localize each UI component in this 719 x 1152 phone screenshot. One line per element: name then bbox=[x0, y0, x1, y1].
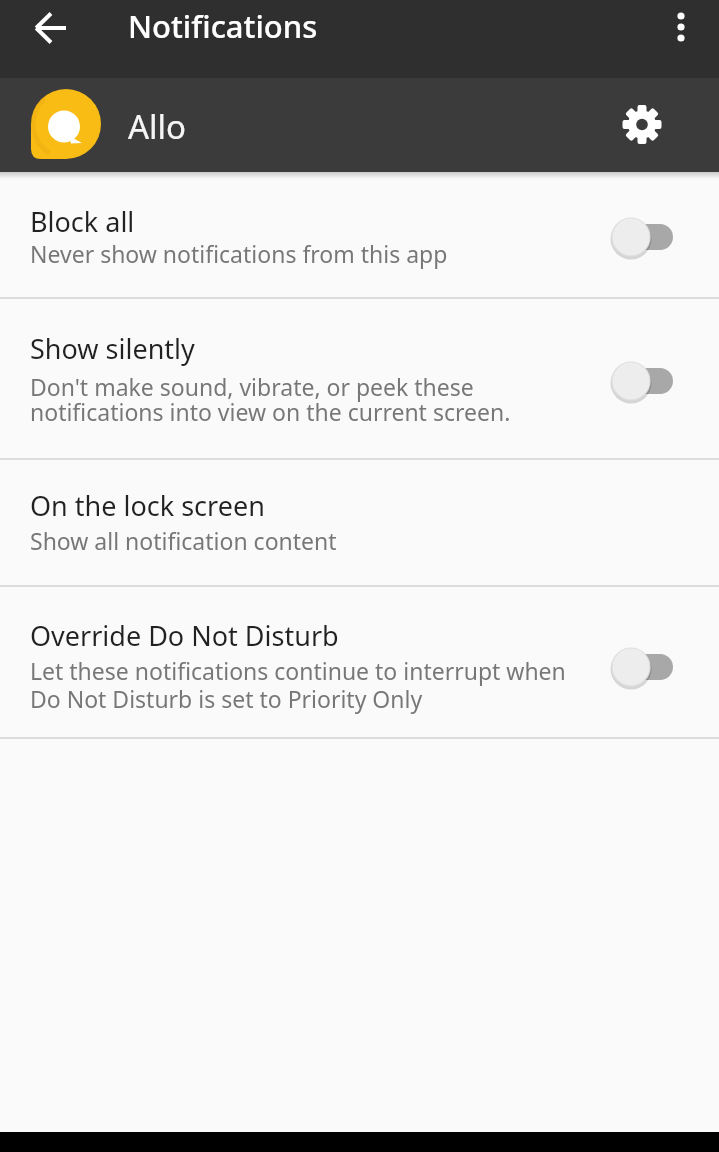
button[interactable] bbox=[0, 172, 719, 298]
staticText: Show all notification content bbox=[30, 525, 337, 556]
staticText: On the lock screen bbox=[30, 487, 265, 524]
staticText: Never show notifications from this app bbox=[30, 238, 448, 269]
staticText: Do Not Disturb is set to Priority Only bbox=[30, 683, 423, 714]
staticText: Show silently bbox=[30, 330, 195, 367]
button[interactable] bbox=[0, 460, 719, 585]
button[interactable] bbox=[586, 356, 676, 406]
staticText: Let these notifications continue to inte… bbox=[30, 655, 566, 686]
button[interactable] bbox=[586, 212, 676, 262]
staticText: Block all bbox=[30, 203, 135, 240]
button[interactable] bbox=[0, 587, 719, 737]
button[interactable] bbox=[0, 299, 719, 459]
button[interactable] bbox=[655, 0, 711, 56]
staticText: notifications into view on the current s… bbox=[30, 396, 511, 427]
button[interactable] bbox=[24, 0, 80, 56]
button[interactable] bbox=[614, 96, 670, 152]
staticText: Don't make sound, vibrate, or peek these bbox=[30, 371, 474, 402]
staticText: Notifications bbox=[128, 5, 318, 47]
button[interactable] bbox=[586, 642, 676, 692]
staticText: Override Do Not Disturb bbox=[30, 617, 339, 654]
staticText: Allo bbox=[128, 104, 187, 149]
